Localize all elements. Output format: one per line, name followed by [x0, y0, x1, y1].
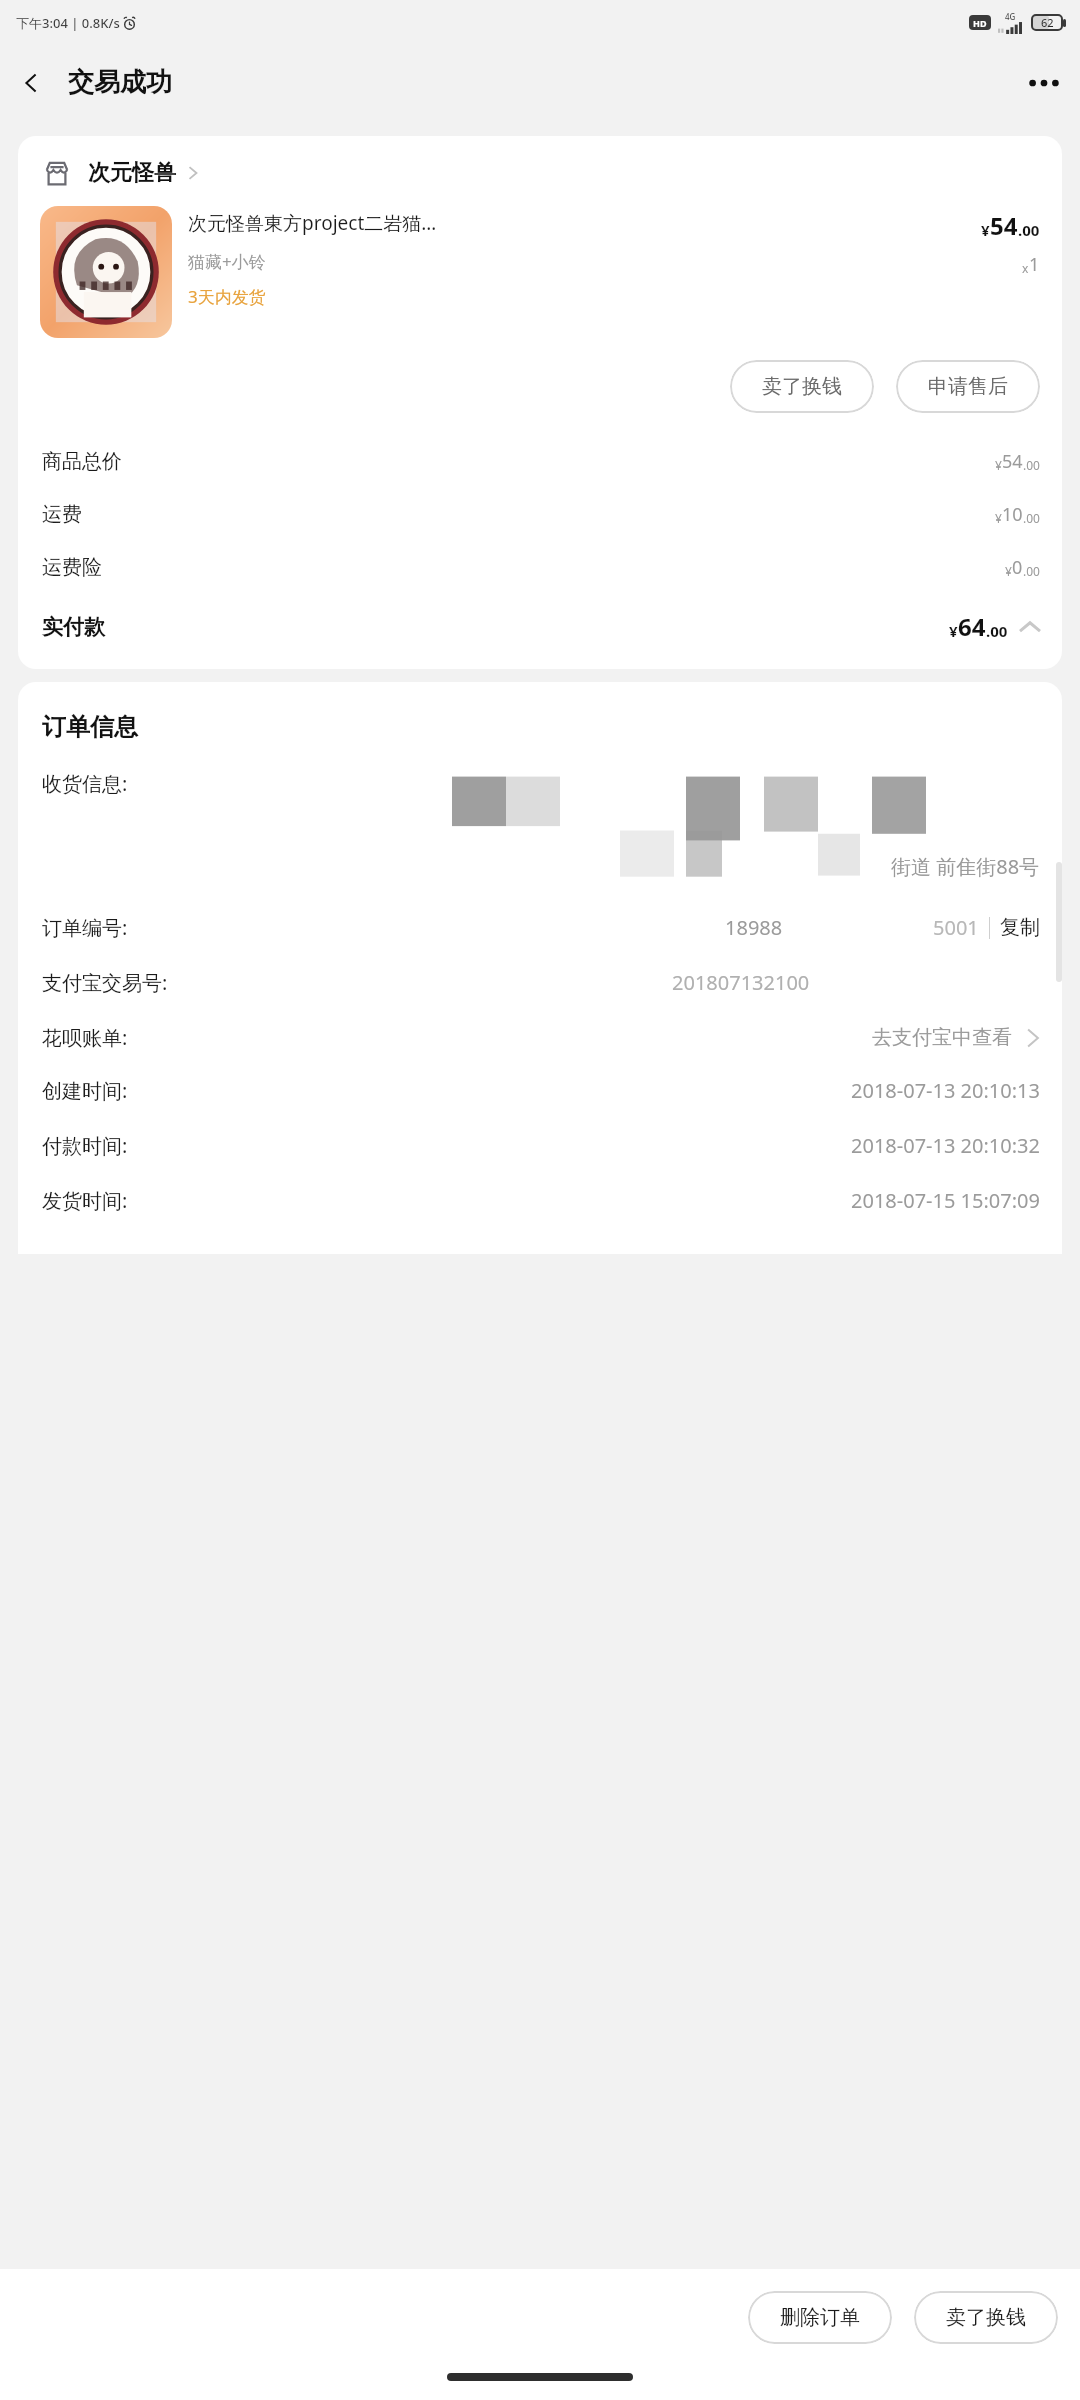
- staticText: 去支付宝中查看: [872, 1025, 1012, 1050]
- staticText: 2018-07-13 20:10:32: [851, 1132, 1040, 1159]
- staticText: 付款时间:: [42, 1132, 128, 1159]
- button[interactable]: 删除订单: [748, 2291, 892, 2344]
- staticText: 支付宝交易号:: [42, 969, 168, 996]
- staticText: 运费: [42, 502, 82, 527]
- staticText: 商品总价: [42, 449, 122, 474]
- staticText: ¥: [1005, 563, 1012, 579]
- staticText: ¥: [949, 621, 958, 641]
- staticText: 54: [1002, 449, 1023, 474]
- button[interactable]: 实付款: [18, 594, 1062, 669]
- staticText: 交易成功: [68, 66, 172, 99]
- staticText: 201807132100: [672, 969, 810, 996]
- staticText: 运费险: [42, 555, 102, 580]
- staticText: 2018-07-15 15:07:09: [851, 1187, 1040, 1214]
- button[interactable]: Back: [6, 57, 58, 109]
- staticText: 62: [1041, 15, 1054, 30]
- staticText: 5001: [933, 914, 979, 941]
- staticText: 花呗账单:: [42, 1024, 128, 1051]
- button[interactable]: 次元怪兽: [18, 136, 1062, 200]
- staticText: 64: [958, 610, 986, 643]
- staticText: 猫藏+小铃: [188, 250, 266, 273]
- staticText: 卖了换钱: [762, 374, 842, 399]
- staticText: 创建时间:: [42, 1077, 128, 1104]
- staticText: 4G: [1005, 11, 1016, 22]
- staticText: ¥: [981, 220, 990, 240]
- button[interactable]: 卖了换钱: [914, 2291, 1058, 2344]
- staticText: 下午3:04 | 0.8K/s: [16, 14, 120, 32]
- staticText: 申请售后: [928, 374, 1008, 399]
- staticText: 删除订单: [780, 2305, 860, 2330]
- staticText: .00: [1023, 510, 1040, 526]
- staticText: x: [1022, 260, 1029, 276]
- button[interactable]: 申请售后: [896, 360, 1040, 413]
- staticText: 3天内发货: [188, 285, 266, 308]
- staticText: 2018-07-13 20:10:13: [851, 1077, 1040, 1104]
- button[interactable]: 花呗账单:: [18, 1024, 1062, 1051]
- staticText: 次元怪兽: [88, 159, 176, 187]
- button[interactable]: 卖了换钱: [730, 360, 874, 413]
- staticText: 0: [1012, 555, 1023, 580]
- button[interactable]: More options: [1018, 57, 1070, 109]
- staticText: .00: [986, 621, 1008, 641]
- staticText: 订单编号:: [42, 914, 128, 941]
- staticText: .00: [1023, 457, 1040, 473]
- staticText: ¥: [995, 510, 1002, 526]
- staticText: HD: [973, 17, 987, 29]
- staticText: 发货时间:: [42, 1187, 128, 1214]
- staticText: 订单信息: [42, 712, 138, 742]
- staticText: 卖了换钱: [946, 2305, 1026, 2330]
- button[interactable]: 复制: [1000, 915, 1040, 940]
- staticText: 收货信息:: [42, 770, 128, 797]
- staticText: .00: [1018, 220, 1040, 240]
- staticText: 18988: [725, 914, 783, 941]
- staticText: 复制: [1000, 915, 1040, 940]
- staticText: 54: [990, 209, 1018, 242]
- staticText: 次元怪兽東方project二岩猫…: [188, 210, 437, 236]
- staticText: 街道 前隹街88号: [891, 853, 1040, 880]
- staticText: 实付款: [42, 614, 105, 640]
- staticText: .00: [1023, 563, 1040, 579]
- staticText: 1: [1029, 252, 1040, 277]
- staticText: ¥: [995, 457, 1002, 473]
- button[interactable]: 次元怪兽東方project二岩猫…: [18, 200, 1062, 342]
- staticText: 10: [1002, 502, 1023, 527]
